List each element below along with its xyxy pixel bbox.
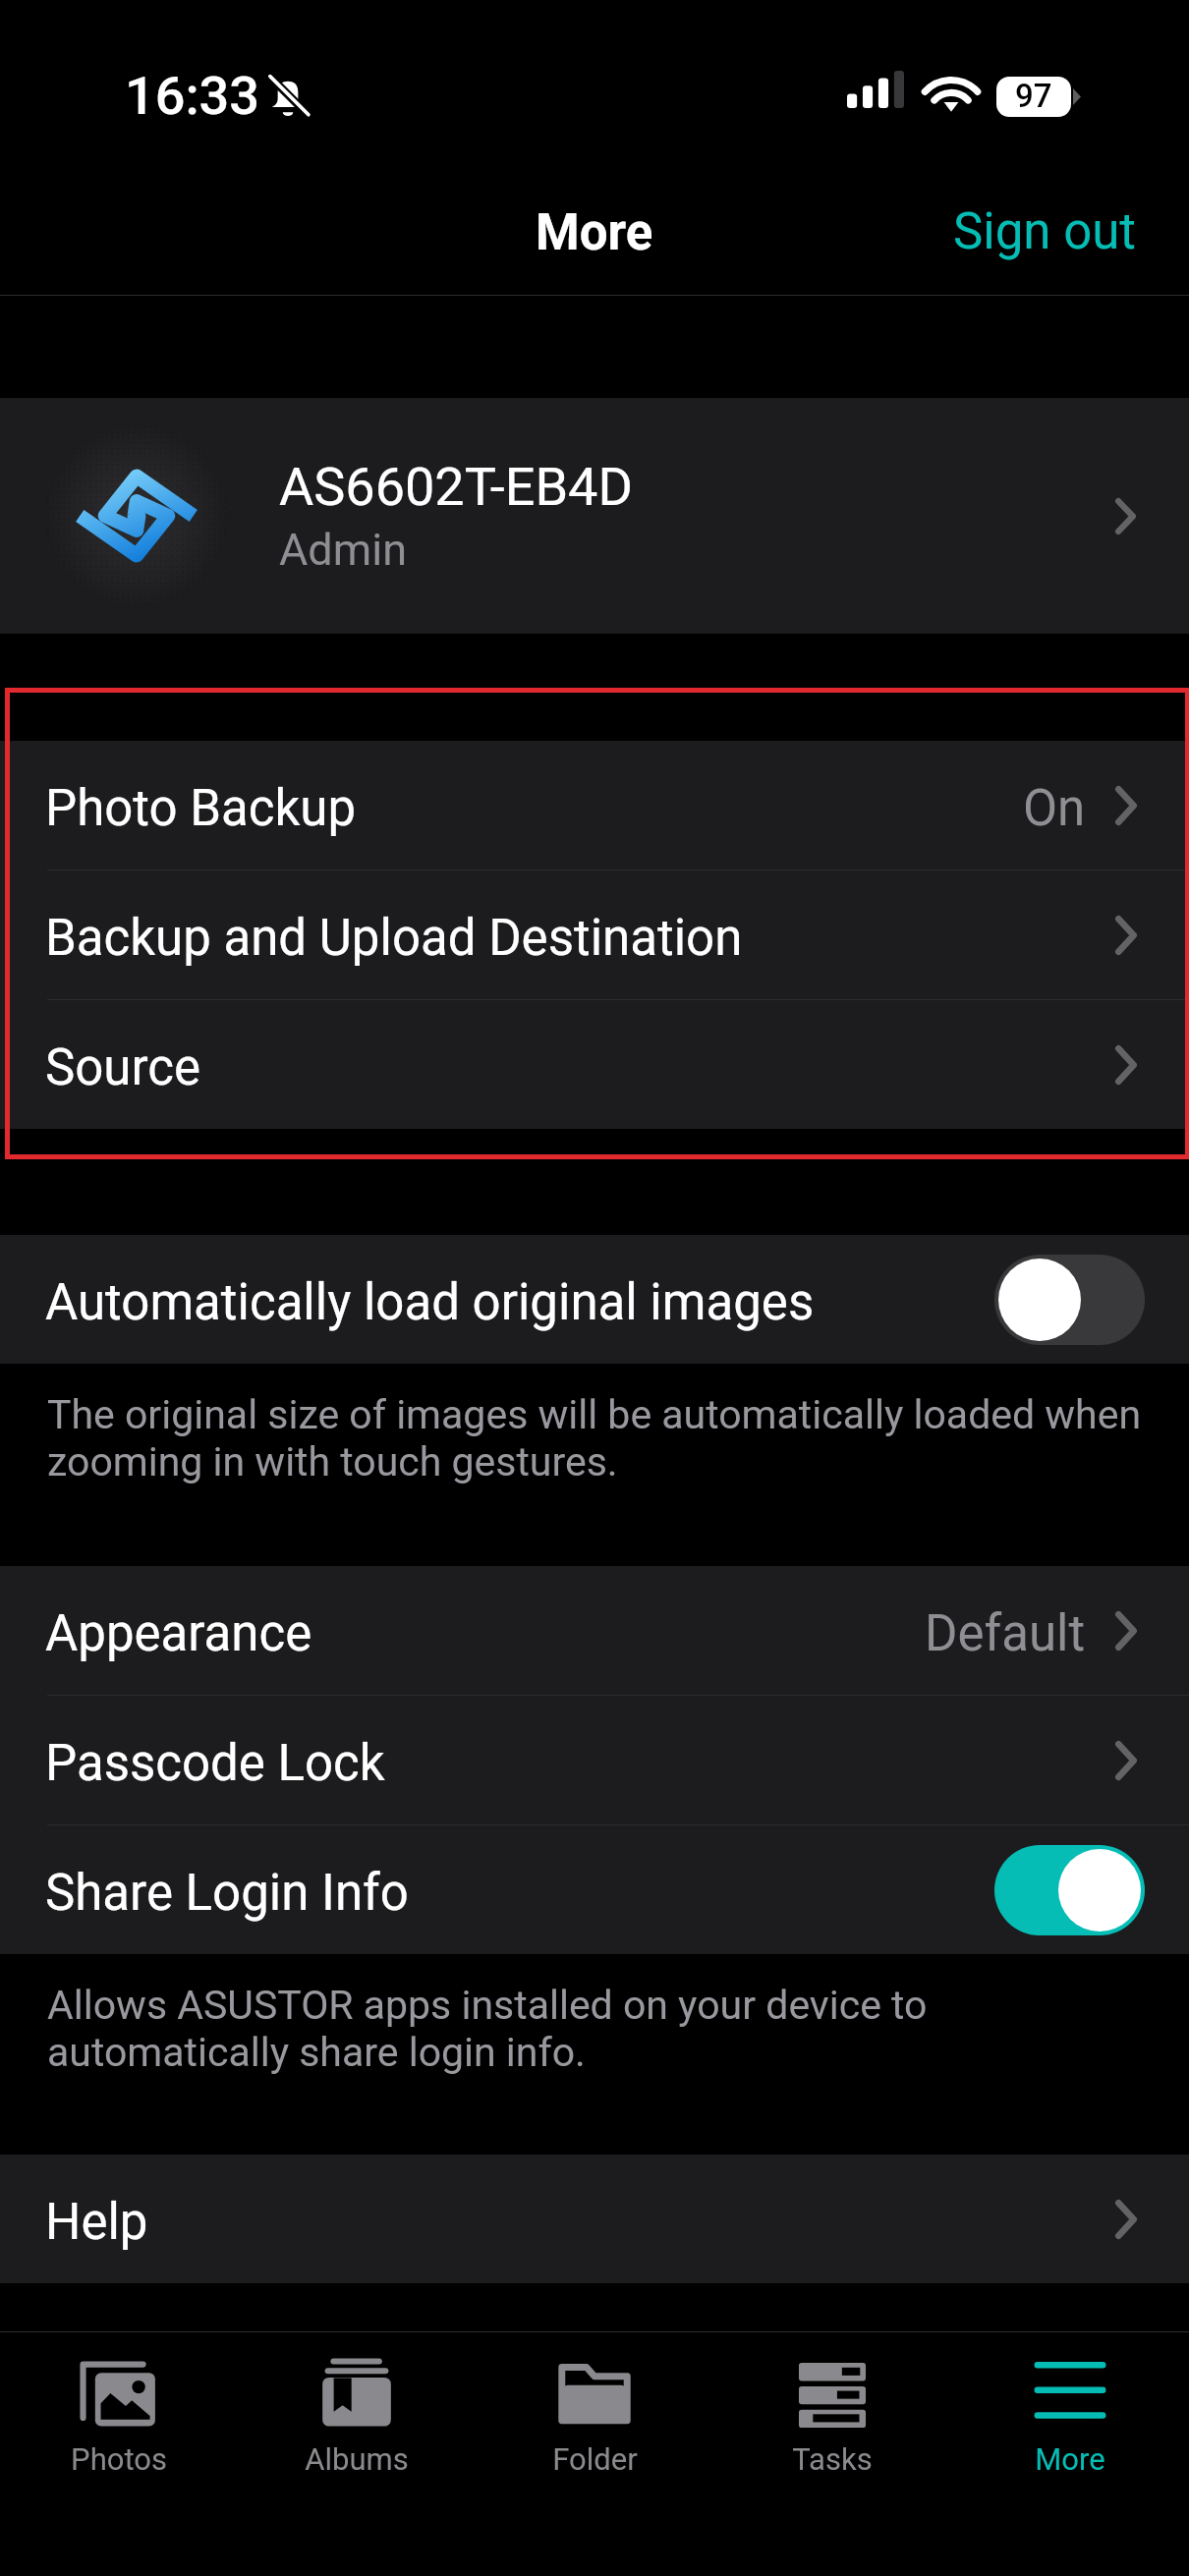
button[interactable]: Photos [0, 2332, 238, 2576]
staticText: Share Login Info [45, 1864, 409, 1923]
staticText: Passcode Lock [45, 1734, 385, 1793]
button[interactable]: Help [0, 2155, 1189, 2283]
button[interactable]: Tasks [713, 2332, 951, 2576]
staticText: Admin [279, 524, 407, 576]
staticText: 97 [1015, 77, 1052, 115]
staticText: More [1035, 2441, 1105, 2477]
button[interactable]: More [951, 2332, 1189, 2576]
staticText: Sign out [953, 202, 1137, 261]
staticText: Automatically load original images [45, 1273, 815, 1332]
staticText: On [1023, 779, 1086, 838]
staticText: Help [45, 2193, 148, 2252]
staticText: Source [45, 1038, 201, 1097]
button[interactable]: Appearance [0, 1566, 1189, 1695]
button[interactable]: Sign out [901, 187, 1189, 277]
staticText: Appearance [45, 1604, 312, 1663]
button[interactable]: Passcode Lock [0, 1696, 1189, 1824]
button[interactable]: AS6602T-EB4D [0, 398, 1189, 634]
staticText: AS6602T-EB4D [279, 456, 633, 518]
button[interactable]: Share Login Info toggle, on [994, 1845, 1145, 1935]
staticText: Photos [71, 2441, 167, 2477]
staticText: Tasks [792, 2441, 873, 2477]
button[interactable]: Share Login Info [0, 1825, 1189, 1954]
staticText: Default [925, 1604, 1086, 1663]
staticText: The original size of images will be auto… [47, 1391, 1150, 1485]
button[interactable]: Backup and Upload Destination [0, 870, 1189, 999]
button[interactable]: Albums [238, 2332, 476, 2576]
staticText: Photo Backup [45, 779, 357, 838]
staticText: Folder [552, 2441, 638, 2477]
button[interactable]: Automatically load original images toggl… [994, 1255, 1145, 1345]
staticText: Backup and Upload Destination [45, 909, 743, 968]
staticText: Albums [305, 2441, 409, 2477]
button[interactable]: Source [0, 1000, 1189, 1129]
staticText: More [536, 203, 653, 262]
button[interactable]: Photo Backup [0, 741, 1189, 869]
staticText: 16:33 [125, 65, 260, 127]
staticText: Allows ASUSTOR apps installed on your de… [47, 1982, 1150, 2076]
button[interactable]: Automatically load original images [0, 1235, 1189, 1364]
button[interactable]: Folder [476, 2332, 713, 2576]
